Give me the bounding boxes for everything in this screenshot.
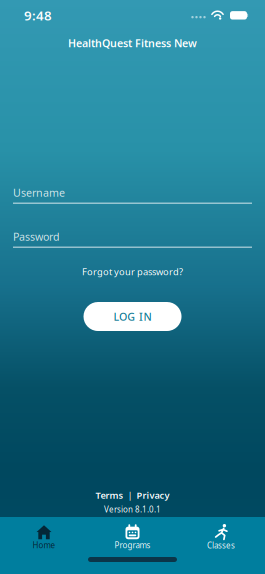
staticText: Home (32, 540, 55, 550)
staticText: Version 8.1.0.1 (104, 504, 161, 515)
staticText: Privacy (136, 489, 169, 501)
button[interactable]: LOG IN (83, 302, 181, 331)
button[interactable]: Username (13, 185, 252, 204)
button[interactable]: Terms (95, 489, 123, 501)
staticText: Terms (95, 489, 123, 501)
staticText: 9:48 (24, 6, 52, 24)
staticText: LOG IN (113, 309, 151, 324)
staticText: HealthQuest Fitness New (68, 36, 197, 50)
staticText: Programs (114, 540, 150, 550)
button[interactable]: Forgot your password? (82, 265, 183, 278)
staticText: | (127, 489, 132, 501)
button[interactable]: Programs (88, 524, 177, 550)
button[interactable]: Home (0, 524, 88, 550)
staticText: Username (13, 185, 65, 200)
button[interactable]: Password (13, 229, 252, 248)
button[interactable]: Classes (177, 524, 265, 551)
staticText: Password (13, 229, 60, 244)
staticText: Classes (207, 540, 235, 551)
button[interactable]: Privacy (136, 489, 169, 501)
staticText: Forgot your password? (82, 265, 183, 278)
